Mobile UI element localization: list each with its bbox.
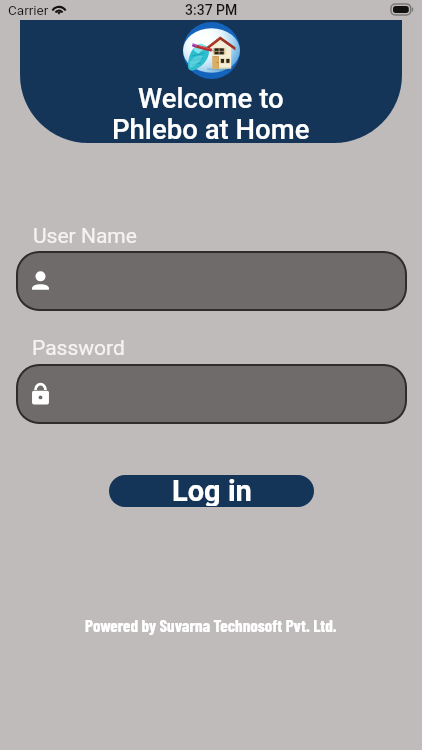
staticText: Powered by Suvarna Technosoft Pvt. Ltd. [85,615,337,635]
staticText: 3:37 PM [185,2,238,18]
staticText: Log in [172,475,252,506]
staticText: Phlebo at Home [112,113,310,143]
button[interactable]: User Name [16,251,407,311]
button[interactable]: Password [16,364,407,424]
staticText: Carrier [8,2,49,18]
button[interactable]: Log in [109,475,314,507]
staticText: Welcome to [138,82,284,114]
staticText: User Name [33,224,137,249]
staticText: Password [32,336,125,361]
